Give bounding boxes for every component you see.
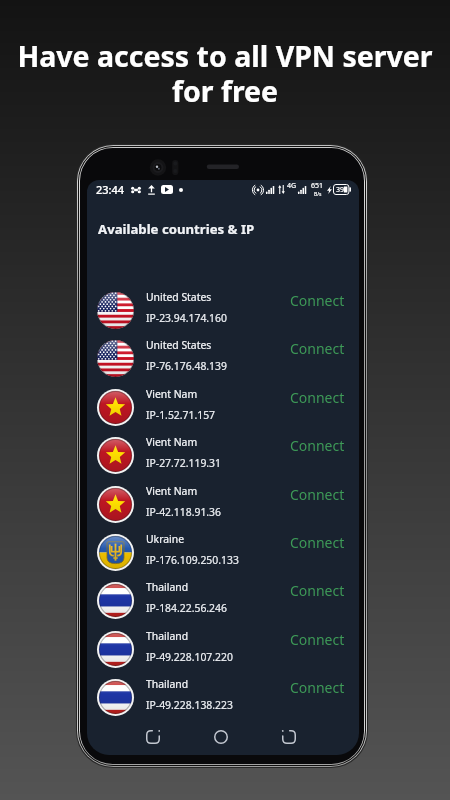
staticText: 23:44 [96, 182, 125, 197]
button[interactable]: United States [87, 334, 359, 382]
button[interactable]: Ukraine [87, 528, 359, 576]
staticText: Connect [290, 436, 345, 455]
staticText: Ukraine [146, 532, 185, 546]
button[interactable]: Thailand [87, 673, 359, 721]
staticText: B/s [314, 191, 322, 198]
staticText: Connect [290, 581, 345, 600]
staticText: IP-49.228.107.220 [146, 650, 233, 664]
staticText: IP-23.94.174.160 [146, 311, 227, 325]
button[interactable]: Vient Nam [87, 480, 359, 528]
button[interactable]: Home [206, 722, 236, 752]
staticText: United States [146, 290, 212, 304]
staticText: IP-184.22.56.246 [146, 601, 227, 615]
button[interactable]: Vient Nam [87, 383, 359, 431]
staticText: IP-49.228.138.223 [146, 698, 233, 712]
staticText: Connect [290, 485, 345, 504]
staticText: Connect [290, 388, 345, 407]
staticText: IP-27.72.119.31 [146, 456, 221, 470]
staticText: 651 [311, 181, 324, 191]
button[interactable]: Recent apps [138, 722, 168, 752]
staticText: Connect [290, 291, 345, 310]
staticText: Connect [290, 630, 345, 649]
button[interactable]: Thailand [87, 576, 359, 624]
staticText: Connect [290, 678, 345, 697]
staticText: IP-176.109.250.133 [146, 553, 239, 567]
staticText: Connect [290, 533, 345, 552]
staticText: United States [146, 338, 212, 352]
staticText: IP-42.118.91.36 [146, 505, 221, 519]
button[interactable]: Back [274, 722, 304, 752]
button[interactable]: Thailand [87, 625, 359, 673]
staticText: 39 [336, 185, 345, 195]
staticText: Thailand [146, 629, 189, 643]
staticText: Have access to all VPN server for free [0, 37, 450, 111]
staticText: Available countries & IP [98, 220, 255, 238]
staticText: 4G [287, 181, 297, 191]
staticText: IP-1.52.71.157 [146, 408, 216, 422]
staticText: Thailand [146, 580, 189, 594]
staticText: Vient Nam [146, 387, 198, 401]
staticText: Vient Nam [146, 484, 198, 498]
button[interactable]: Vient Nam [87, 431, 359, 479]
staticText: IP-76.176.48.139 [146, 359, 227, 373]
staticText: Connect [290, 339, 345, 358]
staticText: Thailand [146, 677, 189, 691]
button[interactable]: United States [87, 286, 359, 334]
staticText: Vient Nam [146, 435, 198, 449]
